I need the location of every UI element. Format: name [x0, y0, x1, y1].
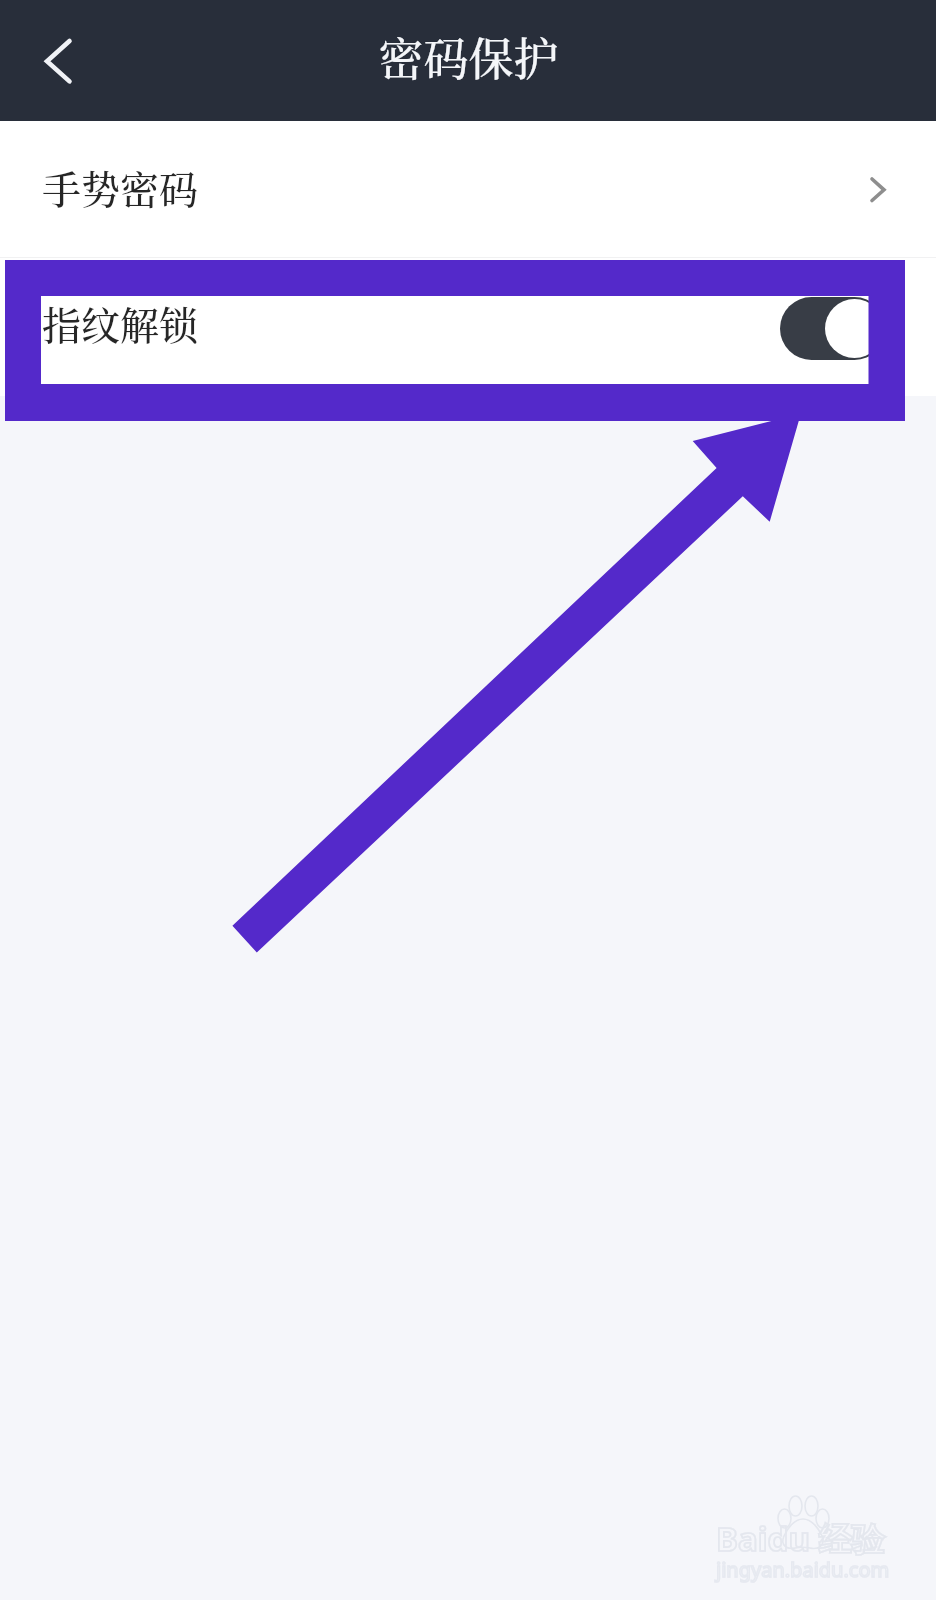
staticText: 密码保护 — [378, 24, 559, 89]
staticText: Baidu 经验 — [716, 1516, 885, 1561]
button[interactable]: 指纹解锁 — [0, 258, 936, 396]
staticText: 手势密码 — [42, 159, 199, 215]
button[interactable]: 手势密码 — [0, 121, 936, 257]
button[interactable]: Back — [11, 25, 86, 97]
staticText: jingyan.baidu.com — [716, 1556, 890, 1583]
staticText: 指纹解锁 — [42, 295, 199, 351]
button[interactable]: Fingerprint unlock toggle — [780, 297, 886, 360]
